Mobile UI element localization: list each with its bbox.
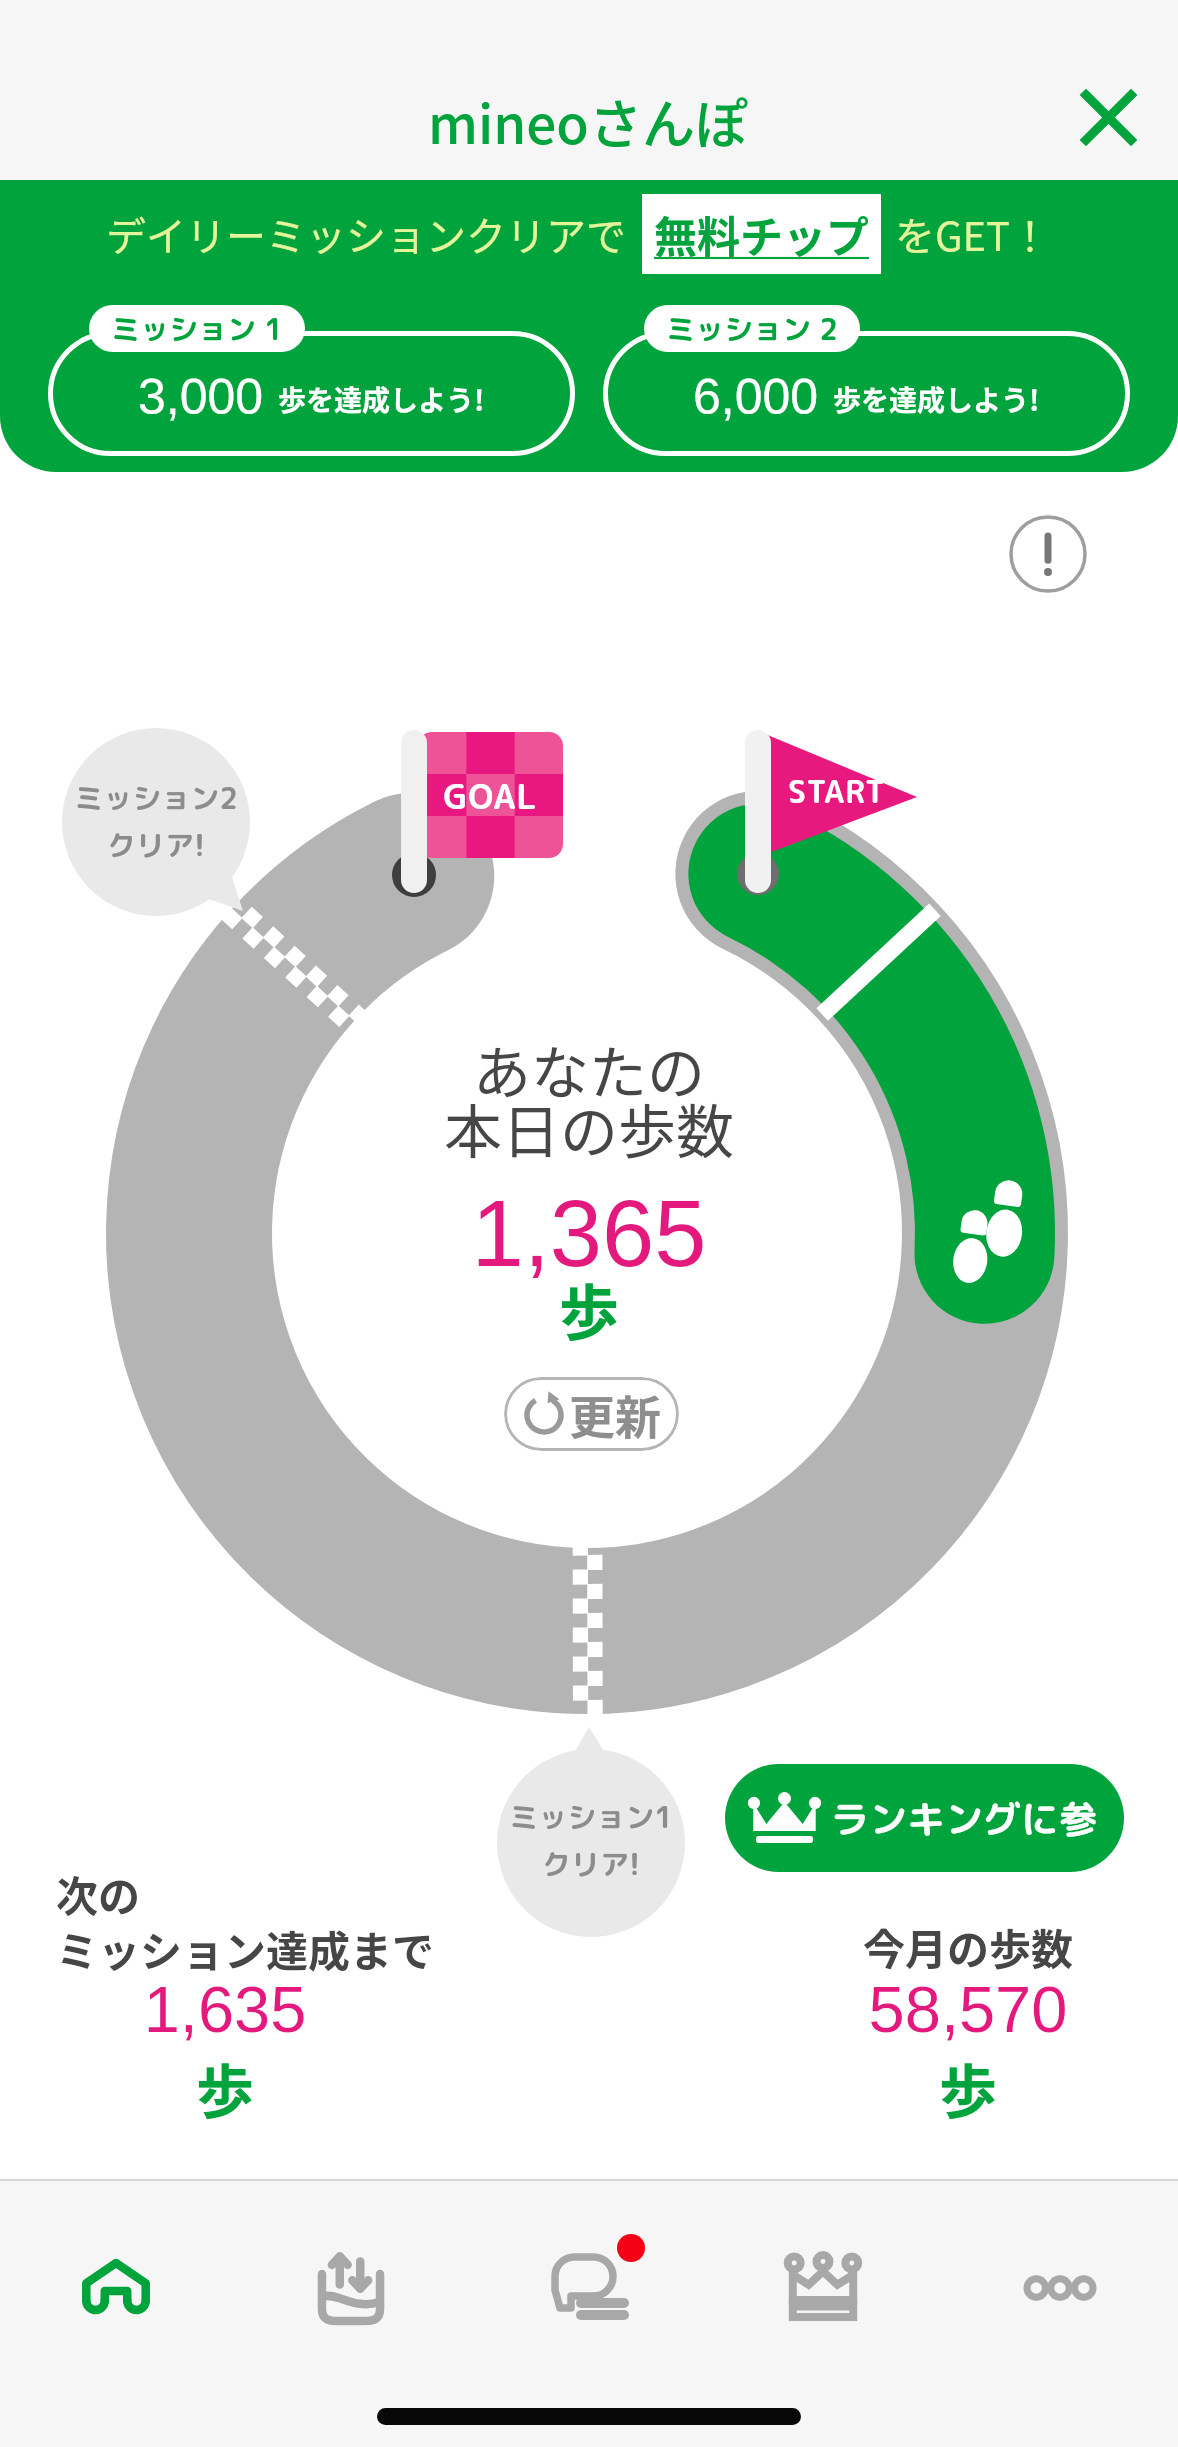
staticText: ミッション2 クリア!	[56, 778, 256, 866]
staticText: デイリーミッションクリアで	[106, 205, 626, 263]
button[interactable]: 更新	[504, 1377, 679, 1451]
button[interactable]: ランキング	[713, 2223, 933, 2353]
staticText: 1,365	[189, 1181, 989, 1286]
button[interactable]: ランキングに参加	[725, 1764, 1124, 1872]
staticText: ランキングに参加	[831, 1792, 1124, 1845]
staticText: 無料チップ	[654, 203, 869, 265]
staticText: 3,000	[138, 369, 264, 425]
staticText: 6,000	[693, 369, 819, 425]
staticText: 更新	[569, 1381, 661, 1448]
staticText: 58,570	[748, 1973, 1178, 2046]
button[interactable]: ホーム	[6, 2223, 226, 2353]
staticText: GOAL	[418, 772, 563, 819]
staticText: ミッション 2	[666, 309, 838, 349]
staticText: 今月の歩数	[748, 1916, 1178, 1977]
staticText: をGET！	[895, 205, 1051, 263]
staticText: ミッション1 クリア!	[491, 1797, 691, 1885]
staticText: ミッション 1	[111, 309, 283, 349]
staticText: 歩	[189, 1265, 989, 1352]
button[interactable]: 閉じる	[1064, 73, 1152, 161]
staticText: mineoさんぽ	[428, 83, 748, 160]
staticText: 歩	[748, 2046, 1178, 2130]
button[interactable]: コミュニティ	[479, 2223, 699, 2353]
button[interactable]: 6,000	[603, 305, 1130, 456]
staticText: 歩を達成しよう!	[278, 379, 485, 420]
staticText: あなたの 本日の歩数	[189, 1027, 989, 1170]
button[interactable]: 3,000	[48, 305, 575, 456]
button[interactable]: チャージ	[241, 2223, 461, 2353]
button[interactable]: その他	[950, 2223, 1170, 2353]
staticText: ミッション達成まで	[56, 1918, 435, 1979]
staticText: 歩を達成しよう!	[833, 379, 1040, 420]
staticText: 1,635	[0, 1973, 450, 2046]
staticText: 次の	[56, 1863, 141, 1924]
staticText: 歩	[0, 2046, 450, 2130]
staticText: START	[772, 770, 902, 813]
button[interactable]: 説明	[1004, 510, 1092, 598]
